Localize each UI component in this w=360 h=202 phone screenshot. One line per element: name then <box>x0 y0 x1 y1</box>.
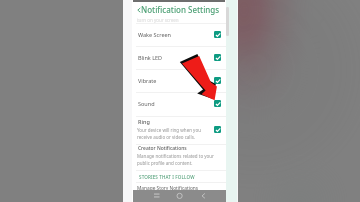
staticText: Your device will ring when you <box>137 127 201 133</box>
button[interactable]: Back <box>135 6 142 15</box>
staticText: Wake Screen <box>138 31 171 38</box>
staticText: Vibrate <box>138 77 157 84</box>
staticText: public profile and content. <box>137 160 193 166</box>
button[interactable] <box>132 69 226 91</box>
staticText: Creator Notifications <box>138 145 187 152</box>
staticText: Notification Settings <box>141 4 220 15</box>
button[interactable]: Toggle setting <box>214 126 221 133</box>
staticText: Manage notifications related to your <box>137 153 214 159</box>
button[interactable]: Toggle setting <box>214 100 221 107</box>
button[interactable] <box>132 46 226 68</box>
staticText: Ring <box>138 118 150 125</box>
staticText: Manage Story Notifications <box>137 185 199 192</box>
button[interactable] <box>132 183 226 190</box>
staticText: receive audio or video calls. <box>137 134 196 140</box>
button[interactable]: Toggle setting <box>214 54 221 61</box>
button[interactable] <box>132 23 226 45</box>
button[interactable]: Toggle setting <box>214 31 221 38</box>
staticText: turn on your screen <box>137 17 179 23</box>
button[interactable] <box>132 92 226 114</box>
staticText: Blink LED <box>138 54 163 61</box>
staticText: STORIES THAT I FOLLOW <box>139 174 195 180</box>
staticText: Sound <box>138 100 155 107</box>
button[interactable]: Toggle setting <box>214 77 221 84</box>
button[interactable] <box>132 2 226 15</box>
button[interactable] <box>132 117 226 144</box>
button[interactable] <box>132 144 226 170</box>
